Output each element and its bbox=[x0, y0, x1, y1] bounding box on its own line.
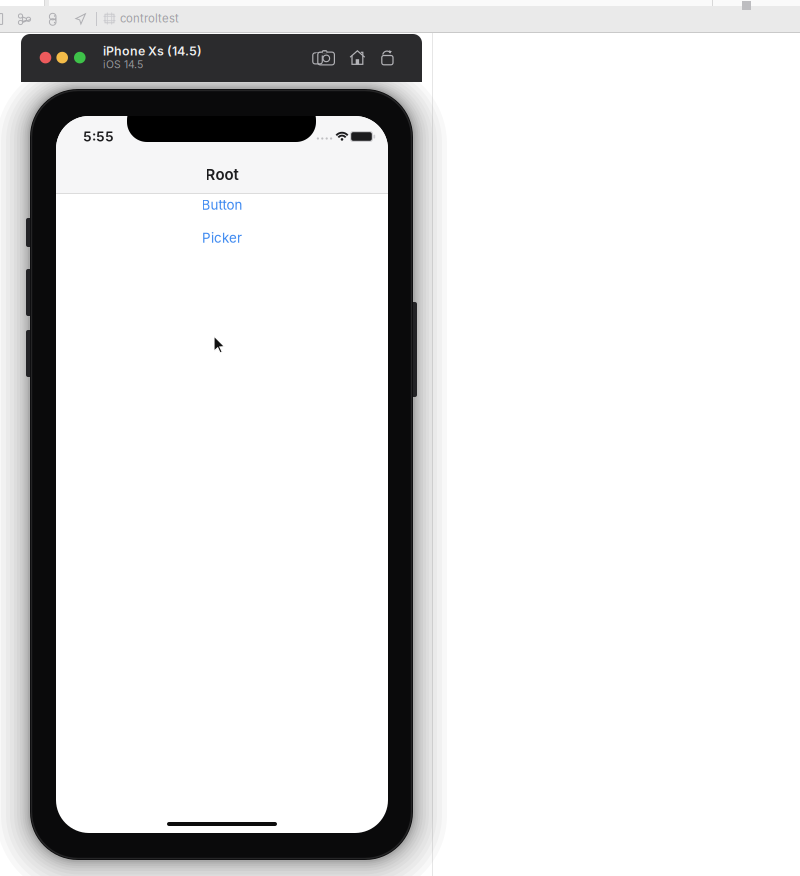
staticText: iOS 14.5 bbox=[103, 58, 143, 71]
staticText: 5:55 bbox=[83, 128, 114, 145]
staticText: iPhone Xs (14.5) bbox=[103, 43, 202, 58]
button[interactable]: Minimize bbox=[56, 52, 68, 63]
button[interactable]: Picker bbox=[56, 227, 388, 249]
staticText: Picker bbox=[202, 230, 242, 246]
staticText: Root bbox=[205, 165, 238, 184]
button[interactable]: Debug bbox=[47, 13, 58, 25]
button[interactable]: Source Control bbox=[17, 13, 31, 25]
staticText: Button bbox=[201, 197, 242, 213]
button[interactable]: Run Destination bbox=[75, 13, 86, 25]
button[interactable]: Rotate bbox=[380, 50, 394, 65]
button[interactable]: Close bbox=[40, 52, 51, 63]
button[interactable]: Screenshot bbox=[313, 50, 334, 65]
button[interactable]: Navigator bbox=[0, 13, 4, 25]
button[interactable]: Button bbox=[56, 194, 388, 216]
staticText: controltest bbox=[120, 12, 179, 25]
button[interactable]: Home bbox=[349, 50, 365, 65]
button[interactable]: Zoom bbox=[74, 52, 86, 63]
